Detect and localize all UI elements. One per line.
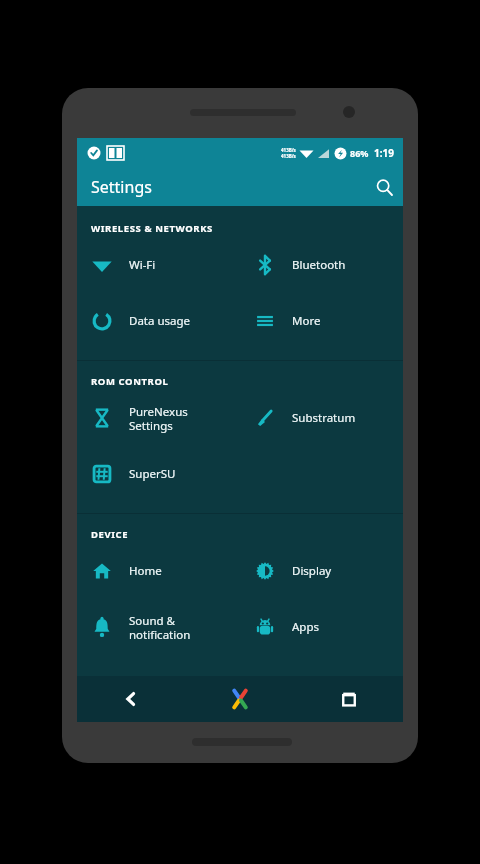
button[interactable]: Sound & notification [77, 599, 240, 655]
staticText: 413B/s [281, 147, 296, 153]
staticText: More [292, 313, 321, 329]
button[interactable]: Search [365, 168, 403, 206]
button[interactable]: Back [77, 676, 185, 722]
staticText: Substratum [292, 410, 356, 426]
staticText: SuperSU [129, 466, 176, 482]
button[interactable]: PureNexus Settings [77, 390, 240, 446]
staticText: Sound & notification [129, 613, 191, 642]
staticText: 86% [350, 147, 369, 159]
staticText: 413B/s [281, 153, 296, 159]
staticText: Apps [292, 619, 320, 635]
button[interactable]: More [240, 293, 403, 349]
staticText: PureNexus Settings [129, 404, 188, 433]
staticText: Wi-Fi [129, 257, 156, 273]
button[interactable]: Data usage [77, 293, 240, 349]
staticText: Display [292, 563, 332, 579]
staticText: WIRELESS & NETWORKS [91, 222, 213, 235]
staticText: DEVICE [91, 528, 129, 541]
staticText: Bluetooth [292, 257, 346, 273]
button[interactable]: Bluetooth [240, 237, 403, 293]
button[interactable]: Home [185, 676, 294, 722]
button[interactable]: Recent apps [294, 676, 403, 722]
button[interactable]: Home [77, 543, 240, 599]
staticText: 1:19 [374, 146, 394, 160]
staticText: Home [129, 563, 162, 579]
staticText: Settings [91, 176, 152, 198]
button[interactable]: Apps [240, 599, 403, 655]
button[interactable]: Substratum [240, 390, 403, 446]
staticText: ROM CONTROL [91, 375, 169, 388]
button[interactable]: Display [240, 543, 403, 599]
button[interactable]: SuperSU [77, 446, 240, 502]
staticText: Data usage [129, 313, 191, 329]
button[interactable]: Wi-Fi [77, 237, 240, 293]
